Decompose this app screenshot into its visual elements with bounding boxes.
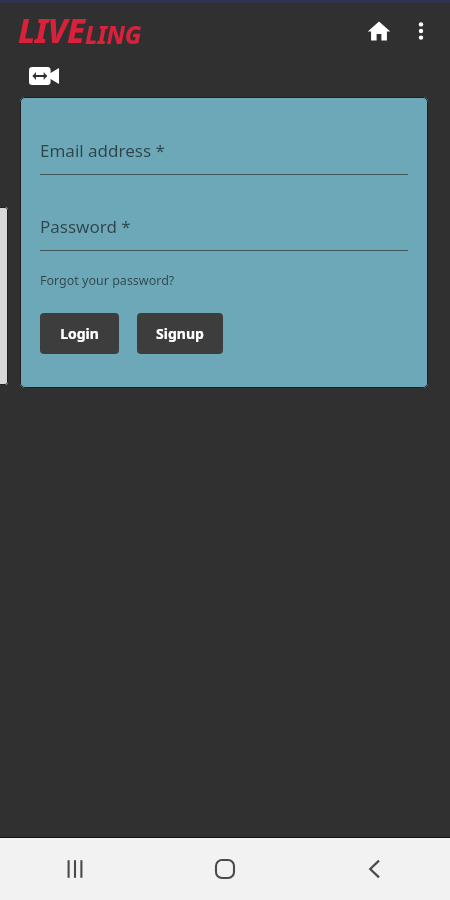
staticText: LIVE [18, 8, 85, 53]
staticText: Login [60, 324, 99, 343]
staticText: Email address * [40, 139, 165, 162]
button[interactable]: LIVE [18, 8, 142, 53]
button[interactable]: Forgot your password? [40, 272, 175, 289]
button[interactable]: Password * [40, 215, 408, 251]
staticText: Signup [156, 324, 204, 343]
button[interactable]: Signup [137, 313, 223, 354]
staticText: Forgot your password? [40, 272, 175, 289]
staticText: Password * [40, 215, 131, 238]
button[interactable]: Recent apps [0, 838, 150, 900]
button[interactable]: Home [358, 10, 400, 52]
button[interactable]: Resize video [28, 63, 60, 89]
button[interactable]: Email address * [40, 139, 408, 175]
staticText: LING [85, 18, 142, 51]
button[interactable]: Login [40, 313, 119, 354]
button[interactable]: Home [150, 838, 300, 900]
button[interactable]: Back [300, 838, 450, 900]
button[interactable]: More options [400, 10, 442, 52]
